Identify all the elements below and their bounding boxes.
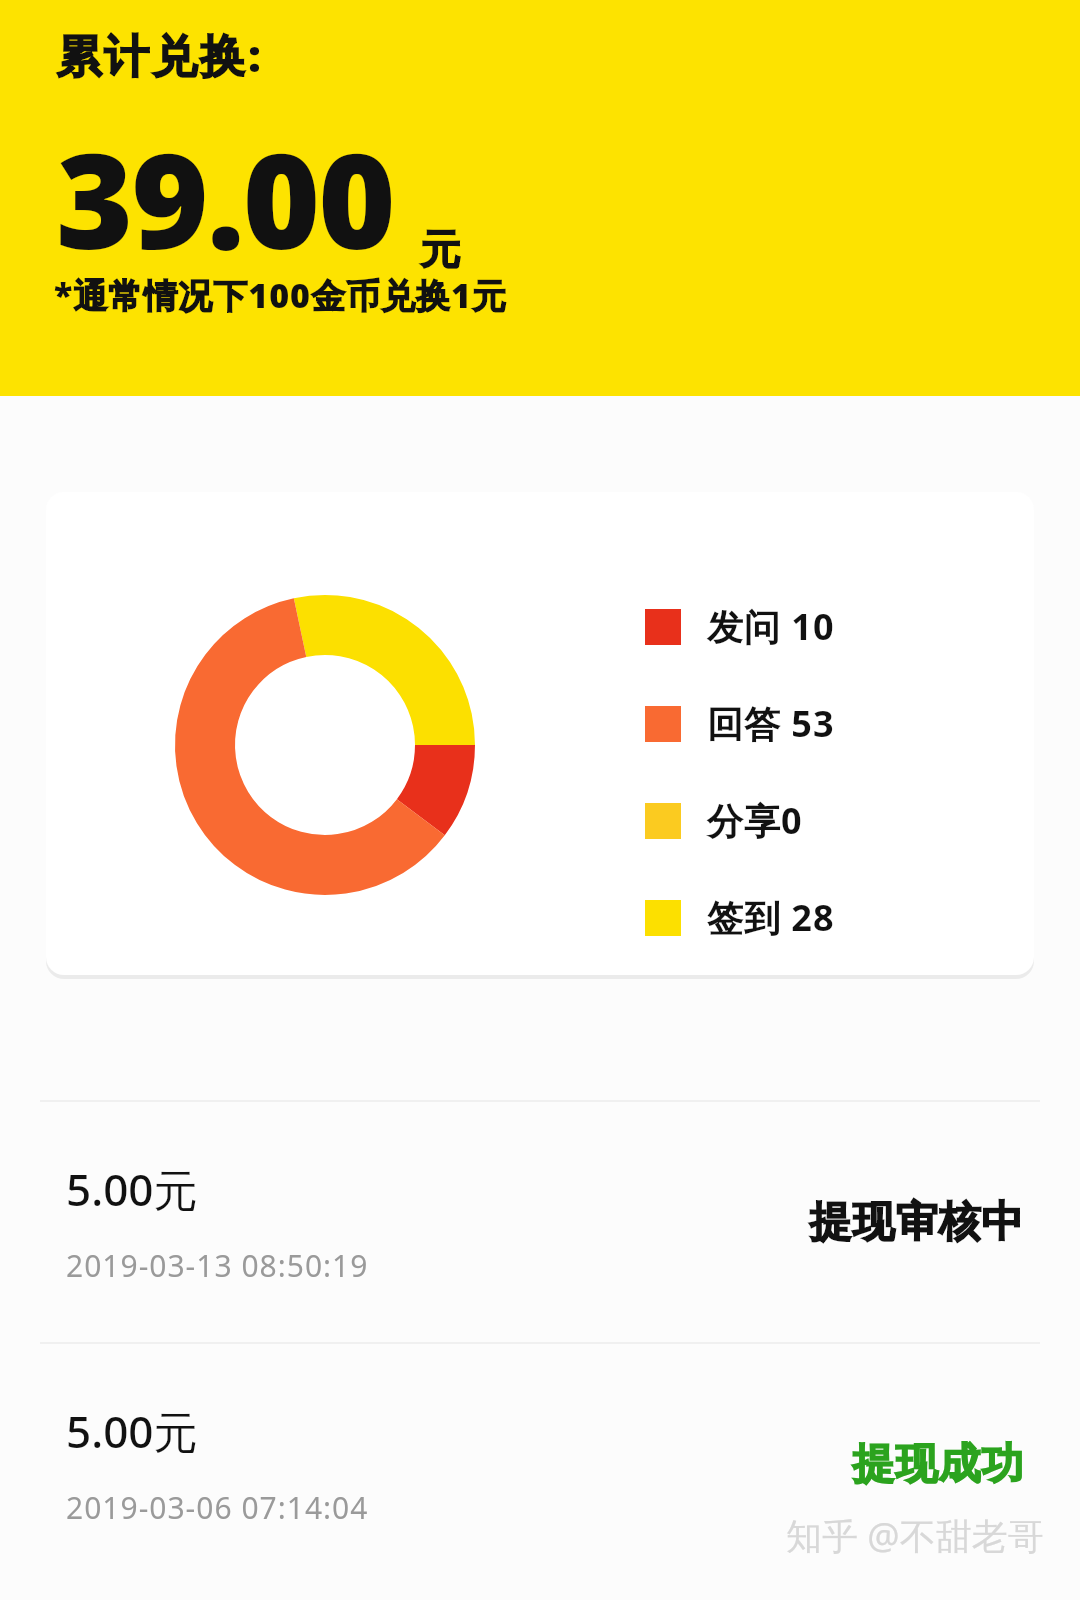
staticText: 发问 10 (707, 602, 835, 651)
staticText: 知乎 @不甜老哥 (786, 1511, 1044, 1560)
staticText: 元 (420, 224, 460, 274)
staticText: 回答 53 (707, 699, 835, 748)
staticText: 分享0 (707, 796, 803, 845)
other: 积分来源占比图 (175, 595, 475, 895)
staticText: 提现审核中 (809, 1196, 1024, 1249)
button[interactable]: 回答 53 (645, 699, 835, 748)
staticText: 提现成功 (852, 1438, 1024, 1491)
staticText: 5.00元 (66, 1159, 198, 1219)
staticText: 2019-03-13 08:50:19 (66, 1245, 369, 1286)
staticText: 39.00 (56, 108, 394, 288)
staticText: 5.00元 (66, 1401, 198, 1461)
staticText: 2019-03-06 07:14:04 (66, 1487, 369, 1528)
button[interactable]: 5.00元 (0, 1344, 1080, 1584)
button[interactable]: 积分来源占比图 (46, 492, 1034, 975)
button[interactable]: 发问 10 (645, 602, 835, 651)
button[interactable]: 签到 28 (645, 893, 835, 942)
button[interactable]: 分享0 (645, 796, 803, 845)
staticText: *通常情况下100金币兑换1元 (54, 272, 507, 318)
staticText: 签到 28 (707, 893, 835, 942)
button[interactable]: 5.00元 (0, 1102, 1080, 1342)
staticText: 累计兑换: (56, 24, 265, 85)
